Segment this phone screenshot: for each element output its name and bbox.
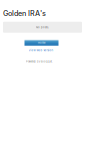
- staticText: Golden IRA's: [3, 9, 46, 18]
- button[interactable]: View web version: [0, 49, 82, 52]
- staticText: No posts.: [36, 26, 49, 29]
- staticText: Powered by Blogger.: [26, 60, 53, 63]
- staticText: Home: [38, 41, 45, 44]
- staticText: View web version: [28, 49, 53, 52]
- button[interactable]: Home: [24, 40, 58, 46]
